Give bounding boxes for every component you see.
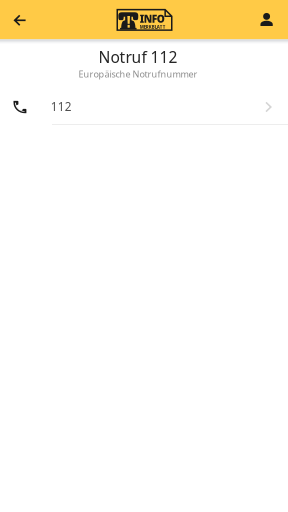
staticText: Notruf 112 (98, 46, 177, 68)
button[interactable]: Account (249, 0, 288, 39)
staticText: MERKBLATT (140, 24, 166, 30)
button[interactable]: Back (0, 0, 39, 39)
staticText: Europäische Notrufnummer (78, 68, 197, 80)
staticText: 112 (51, 98, 72, 114)
staticText: INFO (140, 12, 165, 26)
button[interactable]: 112 (0, 96, 288, 130)
